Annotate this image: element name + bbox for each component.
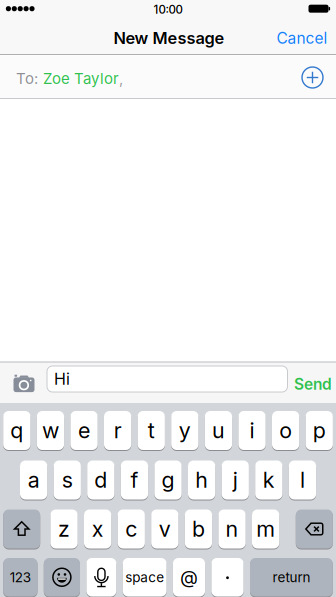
button[interactable]: Period [205, 410, 232, 451]
staticText: q [10, 417, 23, 443]
staticText: 10:00 [153, 2, 182, 16]
button[interactable]: Period [154, 459, 182, 500]
button[interactable]: Add Contact [301, 66, 324, 89]
button[interactable]: Period [37, 410, 64, 451]
button[interactable] [211, 557, 244, 597]
staticText: n [226, 516, 239, 542]
button[interactable]: Period [70, 410, 98, 451]
staticText: h [195, 467, 208, 493]
button[interactable]: Period [272, 410, 299, 451]
button[interactable]: Period [250, 557, 333, 597]
staticText: d [94, 467, 107, 493]
button[interactable]: Period [123, 557, 167, 597]
staticText: s [62, 467, 73, 493]
button[interactable]: Period [171, 410, 198, 451]
staticText: k [263, 467, 275, 493]
button[interactable]: Period [87, 459, 114, 500]
button[interactable]: Period [289, 459, 316, 500]
button[interactable]: Message field [47, 366, 287, 392]
button[interactable]: Period [218, 508, 246, 549]
button[interactable]: Period [20, 459, 47, 500]
button[interactable]: Emoji [44, 557, 80, 597]
staticText: e [78, 417, 90, 443]
staticText: l [300, 467, 305, 493]
staticText: 123 [10, 569, 31, 585]
staticText: j [233, 467, 238, 493]
staticText: i [250, 417, 255, 443]
button[interactable]: Period [255, 459, 282, 500]
staticText: w [42, 417, 59, 443]
button[interactable]: Dictation [86, 557, 116, 597]
staticText: , [119, 69, 123, 87]
button[interactable]: Period [121, 459, 148, 500]
button[interactable]: Period [50, 508, 78, 549]
staticText: t [148, 417, 155, 443]
button[interactable]: Shift [3, 508, 40, 549]
staticText: p [313, 417, 326, 443]
staticText: Cancel [276, 29, 327, 47]
button[interactable]: Cancel [227, 29, 327, 47]
staticText: Zoe Taylor [43, 69, 119, 87]
button[interactable]: Period [118, 508, 145, 549]
button[interactable]: Period [138, 410, 165, 451]
staticText: y [179, 417, 191, 443]
staticText: g [162, 467, 175, 493]
button[interactable]: Period [104, 410, 131, 451]
button[interactable]: Period [173, 557, 205, 597]
button[interactable]: Period [151, 508, 178, 549]
staticText: Hi [54, 369, 70, 389]
staticText: space [125, 569, 164, 585]
staticText: z [58, 516, 70, 542]
staticText: r [114, 417, 122, 443]
button[interactable]: Period [238, 410, 266, 451]
staticText: return [272, 569, 310, 585]
button[interactable]: Send [272, 375, 332, 393]
button[interactable]: Period [3, 557, 37, 597]
staticText: New Message [113, 28, 224, 48]
staticText: x [92, 516, 104, 542]
button[interactable]: Period [84, 508, 111, 549]
staticText: f [130, 467, 138, 493]
button[interactable]: Period [3, 410, 30, 451]
button[interactable]: Camera [13, 374, 38, 394]
staticText: To: [16, 69, 38, 87]
staticText: v [159, 516, 171, 542]
button[interactable]: Period [222, 459, 249, 500]
button[interactable]: Period [185, 508, 212, 549]
staticText: c [125, 516, 137, 542]
staticText: m [256, 516, 275, 542]
button[interactable]: Period [54, 459, 81, 500]
button[interactable]: Period [252, 508, 279, 549]
staticText: o [279, 417, 292, 443]
staticText: u [212, 417, 225, 443]
staticText: Send [294, 375, 332, 393]
button[interactable]: Period [306, 410, 333, 451]
button[interactable]: Delete [296, 508, 333, 549]
button[interactable]: Period [188, 459, 215, 500]
staticText: b [192, 516, 205, 542]
staticText: @ [180, 566, 198, 588]
staticText: a [28, 467, 40, 493]
